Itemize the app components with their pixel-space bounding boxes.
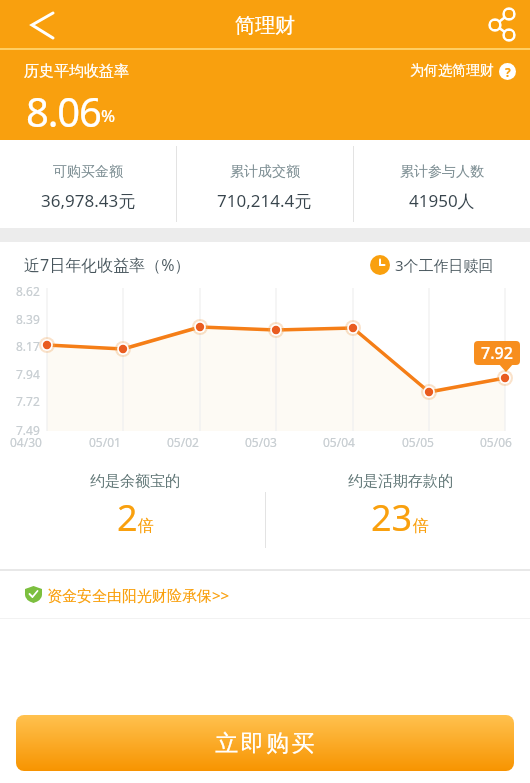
- staticText: 8.17: [16, 338, 40, 354]
- staticText: 历史平均收益率: [24, 62, 129, 81]
- staticText: 04/30: [10, 434, 42, 450]
- staticText: 41950人: [409, 189, 475, 212]
- staticText: 近7日年化收益率（%）: [24, 254, 191, 276]
- staticText: %: [101, 104, 116, 127]
- button[interactable]: 立即购买: [16, 715, 514, 771]
- staticText: 累计参与人数: [400, 163, 484, 181]
- staticText: 710,214.4元: [217, 189, 312, 212]
- staticText: 05/02: [167, 434, 199, 450]
- staticText: 3个工作日赎回: [395, 255, 494, 275]
- staticText: 36,978.43元: [41, 189, 136, 212]
- staticText: 7.49: [16, 422, 40, 438]
- button[interactable]: 为何选简理财: [370, 60, 516, 82]
- staticText: 8.62: [16, 283, 40, 299]
- staticText: 05/03: [245, 434, 277, 450]
- staticText: 倍: [413, 516, 429, 536]
- button[interactable]: 累计成交额: [176, 140, 353, 228]
- button[interactable]: 资金安全由阳光财险承保>>: [0, 571, 530, 618]
- staticText: 约是活期存款的: [348, 472, 453, 491]
- staticText: ?: [505, 64, 511, 80]
- button[interactable]: 可购买金额: [0, 140, 176, 228]
- staticText: 05/06: [480, 434, 512, 450]
- staticText: 2: [117, 493, 138, 542]
- staticText: 7.94: [16, 366, 40, 382]
- staticText: 累计成交额: [230, 163, 300, 181]
- button[interactable]: 累计参与人数: [353, 140, 530, 228]
- staticText: 7.72: [16, 393, 40, 409]
- button[interactable]: [482, 5, 522, 45]
- staticText: 可购买金额: [53, 163, 123, 181]
- button[interactable]: [24, 5, 64, 45]
- staticText: 为何选简理财: [410, 62, 494, 80]
- staticText: 8.39: [16, 311, 40, 327]
- staticText: 倍: [138, 516, 154, 536]
- staticText: 8.06: [26, 84, 101, 134]
- staticText: 简理财: [235, 13, 295, 38]
- staticText: 资金安全由阳光财险承保>>: [47, 585, 230, 605]
- staticText: 05/04: [323, 434, 355, 450]
- staticText: 约是余额宝的: [90, 472, 180, 491]
- staticText: 05/05: [402, 434, 434, 450]
- staticText: 23: [371, 493, 413, 542]
- staticText: 立即购买: [214, 729, 316, 758]
- staticText: 7.92: [481, 342, 513, 364]
- staticText: 05/01: [89, 434, 121, 450]
